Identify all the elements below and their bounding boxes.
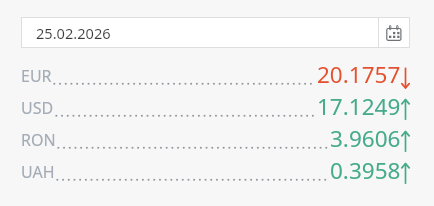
button[interactable]: UAH bbox=[21, 156, 410, 188]
staticText: 25.02.2026 bbox=[36, 23, 111, 43]
staticText: UAH bbox=[21, 161, 55, 183]
button[interactable]: RON bbox=[21, 124, 410, 156]
staticText: RON bbox=[21, 129, 56, 151]
staticText: 3.9606 bbox=[330, 123, 401, 154]
button[interactable]: USD bbox=[21, 92, 410, 124]
button[interactable]: EUR bbox=[21, 60, 410, 92]
staticText: 20.1757 bbox=[317, 59, 401, 90]
staticText: 17.1249 bbox=[317, 91, 401, 122]
staticText: EUR bbox=[21, 65, 52, 87]
staticText: USD bbox=[21, 97, 54, 119]
staticText: 0.3958 bbox=[330, 155, 401, 186]
button[interactable]: Pick date bbox=[378, 17, 410, 48]
